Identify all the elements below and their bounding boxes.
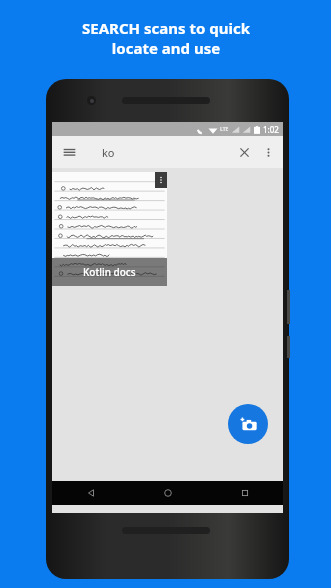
staticText: Kotlin docs (83, 265, 136, 279)
button[interactable]: Scan new document (228, 404, 268, 444)
button[interactable]: More options (257, 141, 279, 163)
button[interactable]: Recent apps (206, 481, 283, 505)
button[interactable]: Menu (58, 141, 80, 163)
staticText: LTE (220, 126, 229, 133)
button[interactable]: Note options (155, 172, 167, 188)
staticText: SEARCH scans to quick locate and use (82, 18, 250, 58)
button[interactable]: Home (129, 481, 206, 505)
button[interactable]: Back (52, 481, 129, 505)
staticText: 1:02 (263, 124, 279, 135)
staticText: ko (102, 145, 115, 160)
button[interactable]: Clear search (233, 141, 255, 163)
button[interactable]: Note options (52, 172, 167, 286)
